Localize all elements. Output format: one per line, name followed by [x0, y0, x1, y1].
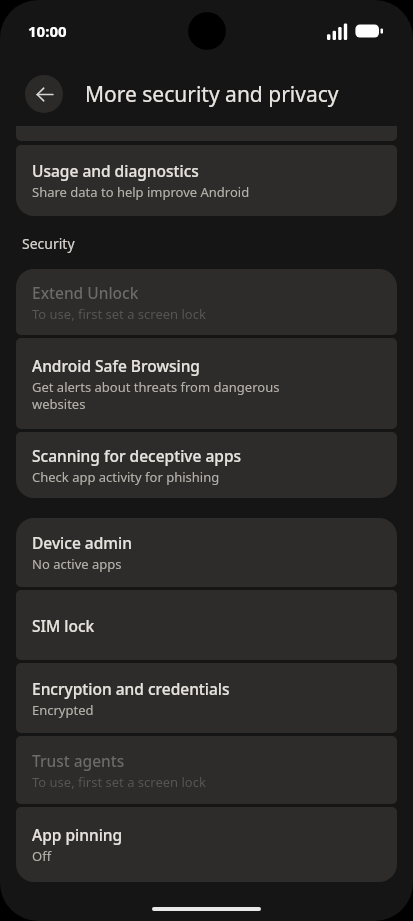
staticText: Security	[22, 234, 75, 253]
staticText: Encryption and credentials	[32, 678, 230, 699]
button[interactable]: Android Safe Browsing	[16, 338, 397, 429]
staticText: Check app activity for phishing	[32, 468, 220, 486]
button[interactable]: Back	[25, 75, 63, 113]
staticText: No active apps	[32, 555, 122, 573]
staticText: SIM lock	[32, 615, 95, 636]
staticText: 10:00	[28, 21, 67, 41]
staticText: Extend Unlock	[32, 282, 139, 303]
staticText: Trust agents	[32, 750, 125, 771]
button[interactable]: Encryption and credentials	[16, 663, 397, 733]
button[interactable]: Device admin	[16, 518, 397, 587]
staticText: Scanning for deceptive apps	[32, 445, 242, 466]
staticText: Device admin	[32, 532, 132, 553]
staticText: To use, first set a screen lock	[32, 773, 206, 791]
staticText: Usage and diagnostics	[32, 160, 199, 181]
staticText: To use, first set a screen lock	[32, 305, 206, 323]
button[interactable]: SIM lock	[16, 590, 397, 660]
staticText: Encrypted	[32, 701, 94, 719]
button[interactable]: Extend Unlock	[16, 269, 397, 335]
staticText: Off	[32, 847, 52, 865]
staticText: More security and privacy	[85, 80, 339, 109]
button[interactable]: Usage and diagnostics	[16, 145, 397, 216]
staticText: App pinning	[32, 824, 123, 845]
button[interactable]: App pinning	[16, 807, 397, 882]
staticText: Get alerts about threats from dangerous …	[32, 378, 280, 413]
staticText: Share data to help improve Android	[32, 183, 250, 201]
button[interactable]: Scanning for deceptive apps	[16, 432, 397, 498]
button[interactable]: Trust agents	[16, 736, 397, 804]
staticText: Android Safe Browsing	[32, 355, 200, 376]
